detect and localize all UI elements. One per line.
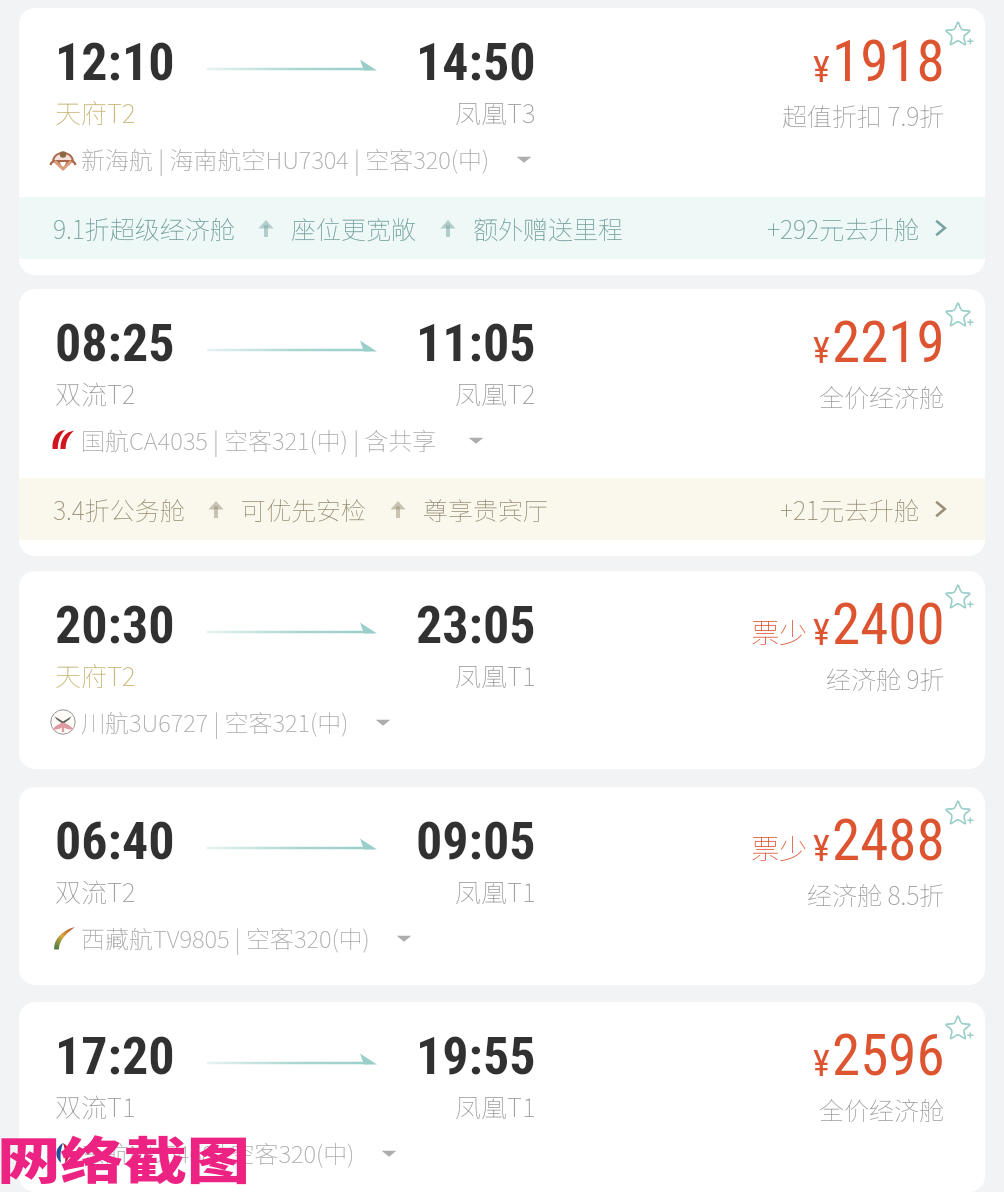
staticText: 西藏航TV9805 | 空客320(中) <box>81 920 370 955</box>
staticText: 凤凰T3 <box>455 93 536 131</box>
staticText: +292元去升舱 <box>767 210 920 246</box>
staticText: 双流T2 <box>55 872 136 910</box>
staticText: 票少 <box>751 611 808 652</box>
staticText: 2400 <box>832 591 945 658</box>
staticText: 凤凰T1 <box>455 1087 536 1125</box>
staticText: 尊享贵宾厅 <box>423 491 549 527</box>
staticText: 23:05 <box>416 595 536 656</box>
button[interactable]: Add to favourites <box>944 300 975 331</box>
staticText: ¥ <box>813 828 830 870</box>
staticText: 双流T1 <box>55 1087 136 1125</box>
staticText: 经济舱 8.5折 <box>807 876 945 912</box>
button[interactable]: Add to favourites <box>19 1002 985 1192</box>
button[interactable]: Add to favourites <box>944 798 975 829</box>
staticText: 东航MU5468 | 空客320(中) <box>81 1135 355 1170</box>
staticText: 2488 <box>832 807 945 874</box>
staticText: 08:25 <box>55 313 175 374</box>
staticText: 凤凰T1 <box>455 656 536 694</box>
staticText: 国航CA4035 | 空客321(中) | 含共享 <box>81 422 442 457</box>
button[interactable]: Add to favourites <box>944 19 975 50</box>
staticText: 全价经济舱 <box>819 1091 945 1127</box>
staticText: 2596 <box>832 1022 945 1089</box>
staticText: +21元去升舱 <box>780 491 920 527</box>
button[interactable]: Add to favourites <box>944 582 975 613</box>
staticText: 20:30 <box>55 595 175 656</box>
button[interactable]: Add to favourites <box>19 289 985 556</box>
staticText: 天府T2 <box>55 656 136 694</box>
staticText: 11:05 <box>416 313 536 374</box>
button[interactable]: Add to favourites <box>19 571 985 769</box>
staticText: 3.4折公务舱 <box>53 491 185 527</box>
button[interactable]: Add to favourites <box>944 1013 975 1044</box>
button[interactable]: 9.1折超级经济舱 <box>19 197 985 259</box>
button[interactable]: Add to favourites <box>19 787 985 985</box>
staticText: 14:50 <box>416 32 536 93</box>
staticText: 19:55 <box>416 1026 536 1087</box>
staticText: ¥ <box>813 612 830 654</box>
staticText: 可优先安检 <box>241 491 367 527</box>
staticText: ¥ <box>813 330 830 372</box>
staticText: 川航3U6727 | 空客321(中) <box>81 704 349 739</box>
staticText: 新海航 | 海南航空HU7304 | 空客320(中) <box>81 141 490 176</box>
staticText: 凤凰T1 <box>455 872 536 910</box>
staticText: ¥ <box>813 49 830 91</box>
staticText: 天府T2 <box>55 93 136 131</box>
staticText: 1918 <box>832 28 945 95</box>
staticText: 全价经济舱 <box>819 378 945 414</box>
staticText: 17:20 <box>55 1026 175 1087</box>
button[interactable]: 3.4折公务舱 <box>19 478 985 540</box>
staticText: 额外赠送里程 <box>473 210 624 246</box>
staticText: ¥ <box>813 1043 830 1085</box>
staticText: 09:05 <box>416 811 536 872</box>
staticText: 座位更宽敞 <box>291 210 417 246</box>
staticText: 双流T2 <box>55 374 136 412</box>
button[interactable]: Add to favourites <box>19 8 985 275</box>
staticText: 9.1折超级经济舱 <box>53 210 235 246</box>
staticText: 超值折扣 7.9折 <box>782 97 945 133</box>
staticText: 12:10 <box>55 32 175 93</box>
staticText: 网络截图 <box>0 1121 251 1192</box>
staticText: 凤凰T2 <box>455 374 536 412</box>
staticText: 2219 <box>832 309 945 376</box>
staticText: 票少 <box>751 827 808 868</box>
staticText: 06:40 <box>55 811 175 872</box>
staticText: 经济舱 9折 <box>826 660 945 696</box>
